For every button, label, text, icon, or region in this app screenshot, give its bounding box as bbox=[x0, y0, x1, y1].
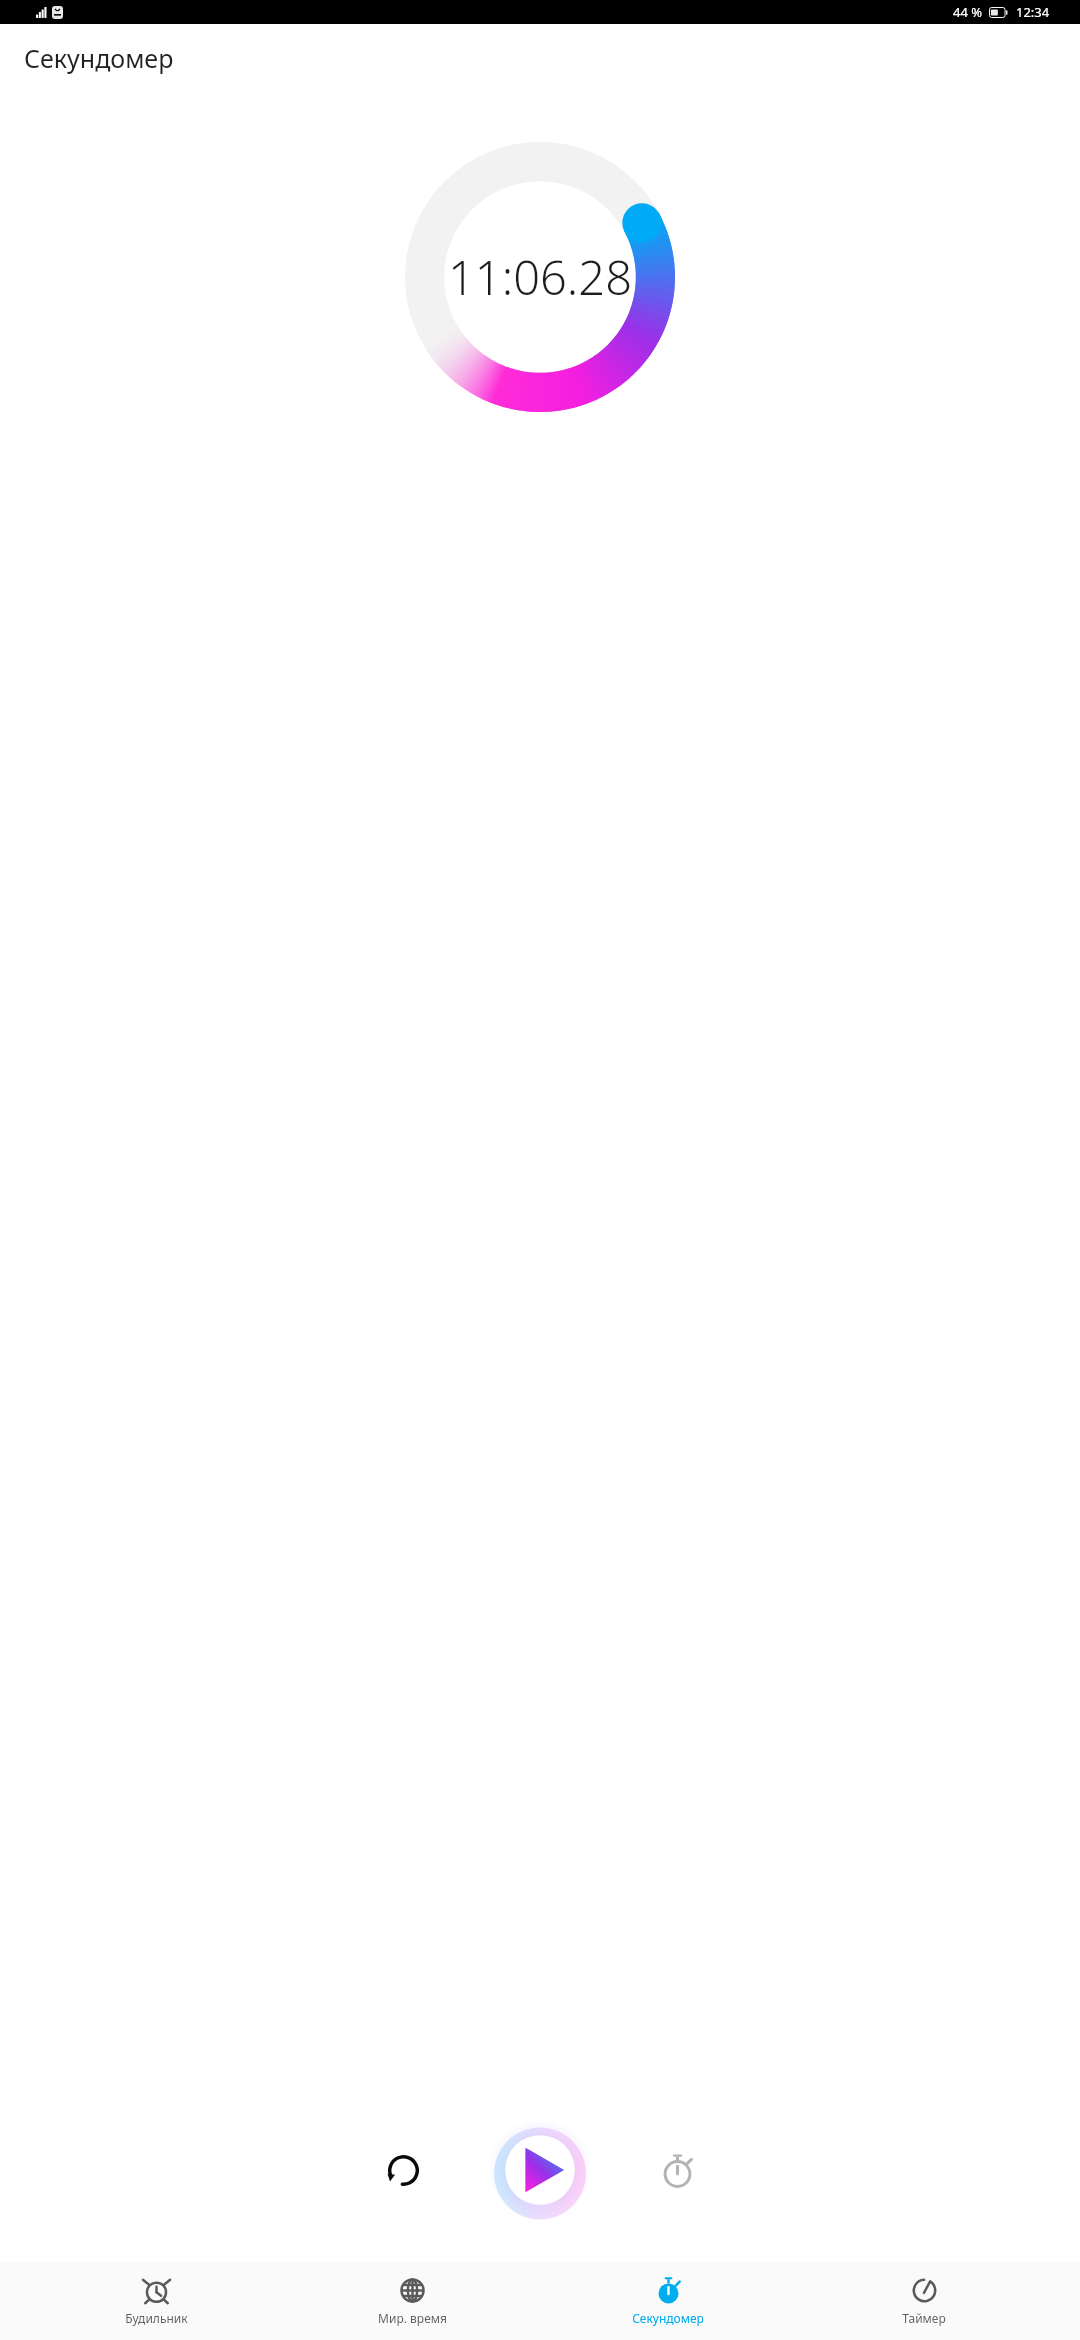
button[interactable]: Сброс bbox=[368, 2135, 438, 2205]
staticText: 44 % bbox=[953, 3, 983, 21]
button[interactable]: Таймер bbox=[824, 2270, 1024, 2332]
staticText: 11:06.28 bbox=[448, 245, 632, 309]
staticText: Секундомер bbox=[632, 2310, 704, 2326]
staticText: Таймер bbox=[902, 2310, 946, 2326]
staticText: 12:34 bbox=[1016, 3, 1050, 21]
button[interactable]: Круг bbox=[642, 2135, 712, 2205]
staticText: Мир. время bbox=[378, 2310, 447, 2326]
staticText: Будильник bbox=[125, 2310, 188, 2326]
staticText: Секундомер bbox=[24, 41, 174, 75]
button[interactable]: Мир. время bbox=[312, 2270, 512, 2332]
button[interactable]: Старт bbox=[488, 2118, 592, 2222]
button[interactable]: Будильник bbox=[56, 2270, 256, 2332]
button[interactable]: Секундомер bbox=[568, 2270, 768, 2332]
